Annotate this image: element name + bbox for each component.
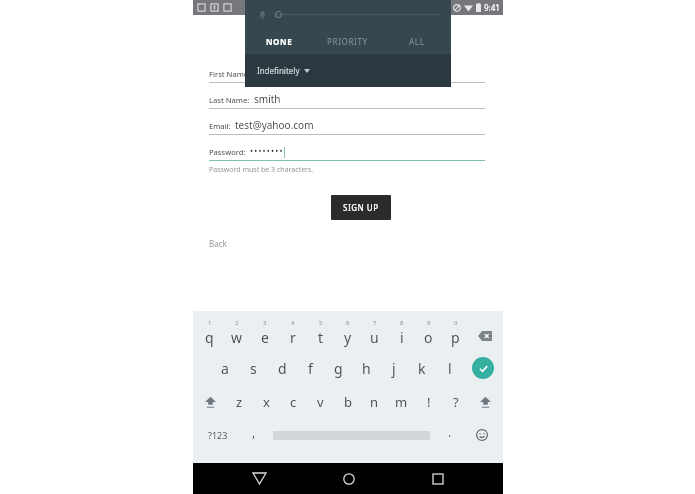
button[interactable]: ? [442,387,469,417]
staticText: 0 [454,319,458,327]
staticText: b [344,393,352,411]
staticText: Back [209,238,227,249]
button[interactable]: Home [297,463,400,494]
staticText: p [451,328,460,347]
staticText: e [261,328,269,347]
button[interactable]: Backspace [469,317,501,349]
button[interactable]: Indefinitely [245,55,451,85]
staticText: PRIORITY [327,36,368,47]
button[interactable]: Enter [464,353,501,383]
button[interactable]: k [408,353,436,383]
staticText: , [252,424,256,440]
staticText: Password must be 3 characters. [209,165,314,175]
staticText: x [263,393,270,411]
button[interactable]: Emoji [463,421,501,449]
button[interactable]: z [226,387,253,417]
button[interactable]: ! [415,387,442,417]
staticText: s [250,359,257,378]
staticText: z [236,393,243,411]
button[interactable]: 2 [223,317,251,349]
button[interactable]: 3 [251,317,279,349]
button[interactable]: Shift [195,387,226,417]
button[interactable]: c [280,387,307,417]
staticText: . [448,424,452,440]
staticText: u [370,328,379,347]
staticText: 1 [208,319,212,327]
staticText: i [400,328,404,347]
button[interactable]: . [436,421,463,449]
button[interactable]: n [361,387,388,417]
button[interactable]: 0 [442,317,469,349]
button[interactable]: Back [209,238,227,249]
button[interactable]: Back [193,463,297,494]
button[interactable]: NONE [245,28,313,54]
button[interactable]: m [388,387,415,417]
staticText: y [344,328,352,347]
button[interactable]: SIGN UP [331,195,391,220]
button[interactable]: g [324,353,352,383]
staticText: a [221,359,229,378]
staticText: n [370,393,379,411]
staticText: ! [427,393,431,411]
button[interactable]: 6 [334,317,361,349]
staticText: SIGN UP [343,202,379,213]
staticText: q [205,328,214,347]
staticText: j [392,359,396,378]
staticText: 9:41 [484,2,500,13]
staticText: w [231,328,243,347]
button[interactable]: h [352,353,380,383]
staticText: c [290,393,297,411]
staticText: t [318,328,324,347]
staticText: 6 [346,319,350,327]
staticText: 3 [263,319,267,327]
staticText: ? [453,393,459,411]
button[interactable]: a [210,353,239,383]
button[interactable]: 9 [415,317,442,349]
button[interactable]: 5 [307,317,334,349]
button[interactable]: 4 [279,317,307,349]
button[interactable]: 7 [361,317,388,349]
staticText: o [424,328,433,347]
button[interactable]: Shift [469,387,501,417]
staticText: d [278,359,287,378]
button[interactable]: s [239,353,268,383]
staticText: g [334,359,343,378]
button[interactable]: ALL [382,28,451,54]
button[interactable]: f [296,353,324,383]
button[interactable]: 8 [388,317,415,349]
staticText: 2 [235,319,239,327]
staticText: 7 [373,319,377,327]
button[interactable]: b [334,387,361,417]
staticText: ?123 [208,429,228,441]
staticText: m [395,393,408,411]
button[interactable]: PRIORITY [313,28,382,54]
button[interactable]: d [268,353,296,383]
staticText: Last Name: [209,95,250,105]
staticText: v [317,393,324,411]
button[interactable]: 1 [195,317,223,349]
button[interactable]: j [380,353,408,383]
button[interactable]: , [240,421,267,449]
staticText: ALL [409,36,425,47]
button[interactable]: x [253,387,280,417]
staticText: r [290,328,296,347]
staticText: 8 [400,319,404,327]
button[interactable]: v [307,387,334,417]
button[interactable]: Recents [400,463,503,494]
staticText: 9 [427,319,431,327]
staticText: f [308,359,313,378]
staticText: NONE [266,36,293,47]
staticText: •••••••• [250,145,284,156]
button[interactable]: ?123 [195,421,240,449]
staticText: test@yahoo.com [235,118,314,132]
button[interactable]: l [436,353,464,383]
staticText: Indefinitely [257,65,300,76]
staticText: 5 [319,319,323,327]
other: Notification volume [257,9,268,20]
staticText: 4 [291,319,295,327]
staticText: First Name: [209,69,251,79]
staticText: h [362,359,371,378]
staticText: smith [254,92,281,106]
staticText: Password: [209,147,246,157]
button[interactable]: Space [267,421,436,449]
